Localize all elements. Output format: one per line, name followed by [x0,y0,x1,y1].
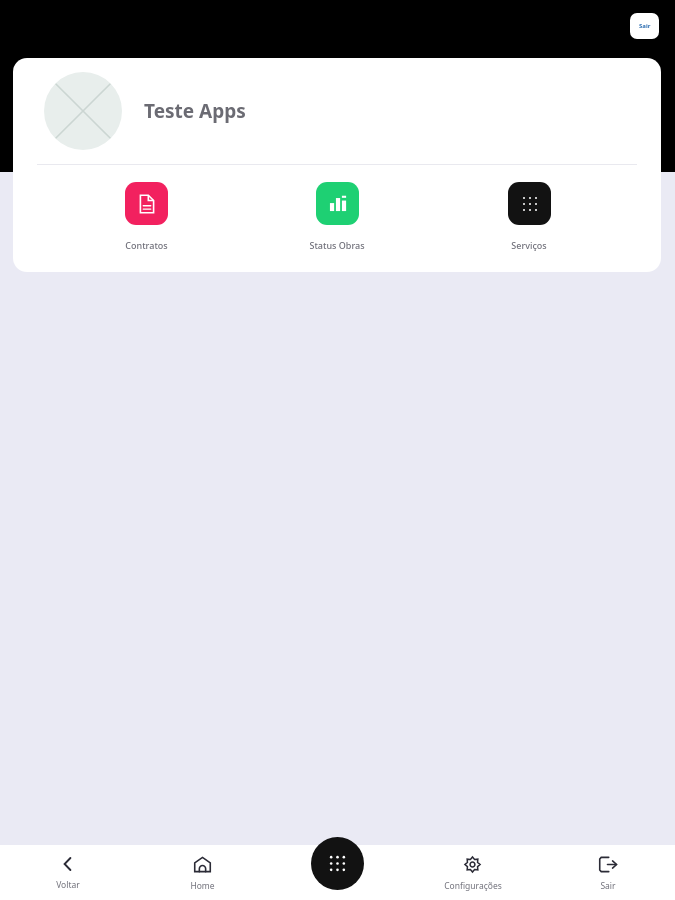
staticText: Configurações [444,880,502,892]
button[interactable]: Status Obras [278,182,396,251]
button[interactable]: Serviços [470,182,588,251]
staticText: Serviços [511,239,547,251]
button[interactable]: Configurações [405,845,540,900]
button[interactable]: Voltar [0,845,135,900]
button[interactable]: Sair [540,845,675,900]
staticText: Status Obras [309,239,365,251]
button[interactable]: Contratos [87,182,205,251]
button[interactable]: Home [135,845,270,900]
staticText: Voltar [56,879,80,891]
staticText: Sair [639,22,651,30]
button[interactable]: Menu [311,837,364,890]
staticText: Home [190,880,215,892]
staticText: Teste Apps [144,98,246,124]
button[interactable]: Sair [630,13,659,39]
staticText: Contratos [125,239,168,251]
staticText: Sair [600,880,616,892]
